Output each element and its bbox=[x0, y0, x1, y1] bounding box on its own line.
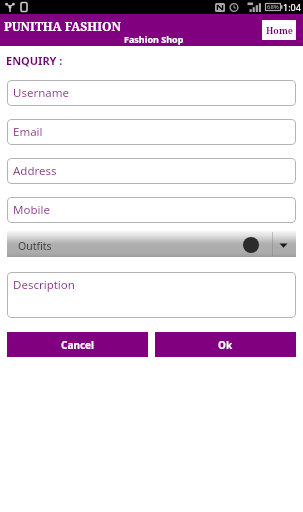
staticText: 1:04 bbox=[283, 1, 301, 13]
staticText: PUNITHA FASHION bbox=[4, 18, 121, 34]
staticText: Home bbox=[266, 24, 293, 36]
button[interactable]: Cancel bbox=[7, 332, 148, 357]
staticText: Email bbox=[13, 124, 43, 140]
button[interactable]: Home bbox=[262, 20, 296, 40]
button[interactable]: Email bbox=[7, 119, 296, 145]
staticText: Cancel bbox=[61, 338, 95, 352]
staticText: 68% bbox=[267, 3, 279, 11]
staticText: ENQUIRY : bbox=[6, 53, 63, 68]
button[interactable]: Ok bbox=[155, 332, 296, 357]
button[interactable]: Description bbox=[7, 272, 296, 318]
button[interactable]: Username bbox=[7, 80, 296, 106]
button[interactable]: Address bbox=[7, 158, 296, 184]
staticText: Username bbox=[13, 85, 69, 101]
button[interactable]: Open outfits dropdown bbox=[272, 231, 296, 257]
staticText: Outfits bbox=[18, 239, 52, 253]
staticText: Mobile bbox=[13, 202, 50, 218]
staticText: Address bbox=[13, 163, 57, 179]
staticText: Fashion Shop bbox=[124, 33, 184, 45]
button[interactable]: Outfits bbox=[7, 231, 296, 257]
staticText: Ok bbox=[218, 338, 233, 352]
button[interactable]: Mobile bbox=[7, 197, 296, 223]
staticText: Description bbox=[13, 277, 75, 293]
